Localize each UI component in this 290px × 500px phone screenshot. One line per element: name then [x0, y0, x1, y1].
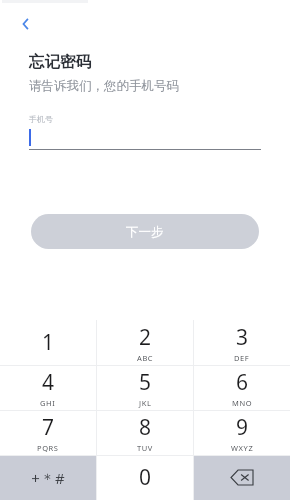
staticText: 2 — [139, 323, 152, 352]
staticText: TUV — [137, 443, 153, 453]
button[interactable]: 下一步 — [31, 214, 259, 249]
staticText: 7 — [42, 413, 55, 442]
staticText: 6 — [236, 368, 249, 397]
staticText: MNO — [232, 398, 253, 408]
staticText: 9 — [236, 413, 249, 442]
staticText: PQRS — [37, 443, 59, 453]
staticText: 3 — [236, 323, 249, 352]
button[interactable]: Backspace — [194, 455, 290, 500]
staticText: DEF — [234, 353, 250, 363]
staticText: 5 — [139, 368, 152, 397]
button[interactable]: +＊# — [0, 455, 96, 500]
staticText: +＊# — [31, 468, 65, 488]
staticText: 1 — [42, 328, 55, 357]
button[interactable]: 9 — [194, 410, 290, 455]
button[interactable]: 3 — [194, 320, 290, 365]
button[interactable]: 5 — [97, 365, 193, 410]
button[interactable]: 4 — [0, 365, 96, 410]
button[interactable]: 手机号 — [29, 114, 261, 150]
staticText: 8 — [139, 413, 152, 442]
button[interactable]: 0 — [97, 455, 193, 500]
button[interactable]: 1 — [0, 320, 96, 365]
button[interactable]: Back — [12, 10, 40, 38]
staticText: ABC — [137, 353, 154, 363]
button[interactable]: 7 — [0, 410, 96, 455]
staticText: 请告诉我们，您的手机号码 — [29, 78, 179, 94]
staticText: 忘记密码 — [29, 52, 91, 72]
staticText: JKL — [139, 398, 152, 408]
staticText: WXYZ — [231, 443, 254, 453]
staticText: GHI — [40, 398, 56, 408]
staticText: 手机号 — [29, 114, 53, 124]
button[interactable]: 8 — [97, 410, 193, 455]
button[interactable]: 2 — [97, 320, 193, 365]
staticText: 4 — [42, 368, 55, 397]
staticText: 下一步 — [126, 224, 164, 240]
button[interactable]: 6 — [194, 365, 290, 410]
staticText: 0 — [139, 463, 152, 492]
